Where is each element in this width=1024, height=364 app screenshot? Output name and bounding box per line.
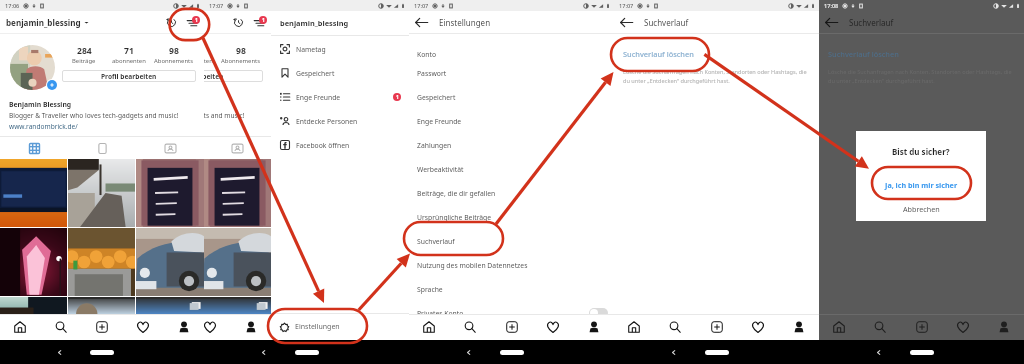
button[interactable]: Einstellungen — [271, 314, 409, 340]
staticText: 98 — [236, 45, 246, 57]
other: Back — [670, 349, 677, 356]
staticText: 98 — [169, 45, 179, 57]
staticText: Blogger & Traveller who loves tech-gadge… — [204, 111, 245, 120]
button[interactable] — [0, 228, 67, 296]
button[interactable]: Activity — [542, 316, 564, 338]
button[interactable]: Nutzung des mobilen Datennetzes — [409, 253, 614, 277]
button[interactable]: Suchverlauf — [409, 229, 614, 253]
button[interactable]: Activity — [952, 316, 974, 338]
button[interactable]: Home — [9, 316, 31, 338]
staticText: 17:07 — [209, 2, 224, 10]
staticText: Abonnements — [221, 57, 260, 65]
button[interactable]: Privates Konto — [409, 301, 614, 325]
button[interactable]: Ursprüngliche Beiträge — [409, 205, 614, 229]
button[interactable]: List view — [68, 137, 136, 159]
other: Back — [260, 349, 267, 356]
button[interactable]: Back — [413, 14, 430, 31]
button[interactable]: Nametag — [271, 37, 409, 61]
button[interactable] — [0, 297, 67, 314]
button[interactable] — [0, 159, 67, 227]
button[interactable]: Profile — [240, 316, 262, 338]
button[interactable]: Menu — [183, 14, 200, 31]
button[interactable]: Activity — [204, 316, 221, 338]
staticText: benjamin_blessing — [280, 18, 349, 28]
button[interactable]: Profil bearbeiten — [204, 70, 263, 82]
staticText: Suchverlauf — [644, 17, 689, 28]
button[interactable]: Add post — [501, 316, 523, 338]
button[interactable]: Search — [664, 316, 686, 338]
staticText: 17:08 — [824, 2, 839, 10]
staticText: Einstellungen — [295, 322, 340, 332]
button[interactable] — [204, 228, 271, 296]
button[interactable]: Back — [618, 14, 635, 31]
button[interactable]: Tagged — [136, 137, 204, 159]
button[interactable]: Enge Freunde — [271, 85, 409, 109]
button[interactable]: Add post — [706, 316, 728, 338]
staticText: Konto — [417, 50, 437, 59]
button[interactable]: Tagged — [204, 137, 271, 159]
button[interactable]: Search — [869, 316, 891, 338]
staticText: Beiträge, die dir gefallen — [417, 189, 496, 198]
staticText: 17:06 — [5, 2, 20, 10]
staticText: Sprache — [417, 285, 443, 294]
button[interactable]: Grid view — [0, 137, 68, 159]
button[interactable]: Search — [50, 316, 72, 338]
button[interactable]: Menu — [250, 14, 267, 31]
button[interactable]: Activity history — [230, 14, 247, 31]
button[interactable] — [68, 228, 135, 296]
button[interactable]: Activity — [132, 316, 154, 338]
button[interactable]: Sprache — [409, 277, 614, 301]
button[interactable]: Beiträge, die dir gefallen — [409, 181, 614, 205]
button[interactable] — [204, 159, 271, 227]
staticText: Passwort — [417, 69, 447, 78]
button[interactable]: Facebook öffnen — [271, 133, 409, 157]
staticText: Profil bearbeiten — [101, 72, 157, 81]
staticText: abonnenten — [204, 57, 213, 65]
button[interactable]: Enge Freunde — [409, 109, 614, 133]
button[interactable]: Passwort — [409, 61, 614, 85]
button[interactable]: Home — [418, 316, 440, 338]
button[interactable]: Profile — [993, 316, 1015, 338]
staticText: Blogger & Traveller who loves tech-gadge… — [9, 111, 179, 120]
button[interactable]: Ja, ich bin mir sicher — [856, 175, 986, 195]
button[interactable]: Gespeichert — [271, 61, 409, 85]
staticText: 17:07 — [619, 2, 634, 10]
staticText: Gespeichert — [296, 69, 335, 78]
button[interactable]: Profil bearbeiten — [62, 70, 196, 82]
other: Back — [465, 349, 472, 356]
button[interactable]: Werbeaktivität — [409, 157, 614, 181]
staticText: Zahlungen — [417, 141, 452, 150]
button[interactable] — [68, 159, 135, 227]
button[interactable]: Add post — [911, 316, 933, 338]
staticText: Nutzung des mobilen Datennetzes — [417, 261, 528, 270]
button[interactable]: Entdecke Personen — [271, 109, 409, 133]
button[interactable]: Profile — [788, 316, 810, 338]
button[interactable]: Add post — [91, 316, 113, 338]
button[interactable] — [68, 297, 135, 314]
button[interactable] — [136, 159, 204, 227]
staticText: 17:07 — [414, 2, 429, 10]
staticText: Abonnements — [154, 57, 193, 65]
staticText: Suchverlauf löschen — [828, 49, 899, 59]
button[interactable]: Abbrechen — [856, 201, 986, 217]
button[interactable]: Zahlungen — [409, 133, 614, 157]
button[interactable] — [136, 228, 204, 296]
button[interactable]: Konto — [409, 42, 614, 66]
button[interactable]: Home — [623, 316, 645, 338]
staticText: www.randombrick.de/ — [9, 122, 78, 131]
button[interactable]: Profile — [583, 316, 605, 338]
staticText: Werbeaktivität — [417, 165, 464, 174]
button[interactable]: Back — [823, 14, 840, 31]
button[interactable]: Search — [459, 316, 481, 338]
button[interactable]: Activity history — [163, 14, 180, 31]
button[interactable]: Gespeichert — [409, 85, 614, 109]
button[interactable] — [204, 297, 271, 314]
staticText: abonnenten — [112, 57, 146, 65]
button[interactable] — [136, 297, 204, 314]
button[interactable]: Home — [828, 316, 850, 338]
other: Back — [875, 349, 882, 356]
staticText: Abbrechen — [903, 204, 940, 214]
button[interactable]: Profile — [173, 316, 195, 338]
button[interactable]: Activity — [747, 316, 769, 338]
button[interactable]: Suchverlauf löschen — [623, 49, 694, 59]
